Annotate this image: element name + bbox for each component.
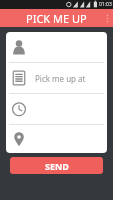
staticText: SEND <box>45 160 69 172</box>
button[interactable]: Time <box>6 94 107 124</box>
button[interactable]: Name <box>6 32 107 62</box>
staticText: PICK ME UP <box>26 11 87 26</box>
button[interactable]: Location <box>6 125 107 153</box>
button[interactable]: Message <box>6 63 107 93</box>
button[interactable]: More options <box>101 9 113 27</box>
staticText: 01:03 <box>99 1 112 8</box>
button[interactable]: SEND <box>10 157 103 174</box>
staticText: Pick me up at <box>35 73 86 84</box>
